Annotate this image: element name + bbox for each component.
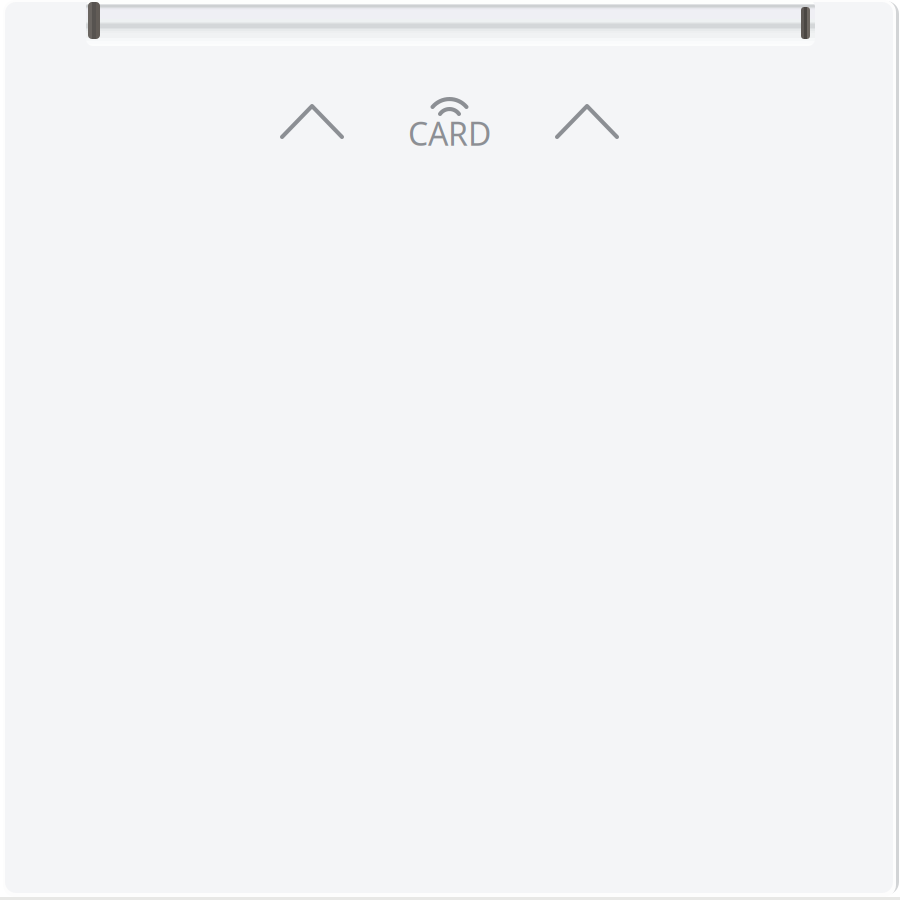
button[interactable]: Card slot: [86, 0, 815, 46]
button[interactable]: Hold key card here: [387, 80, 511, 160]
button[interactable]: Raise left blind: [177, 48, 447, 864]
staticText: CARD: [408, 112, 491, 154]
button[interactable]: Raise right blind: [452, 48, 722, 864]
